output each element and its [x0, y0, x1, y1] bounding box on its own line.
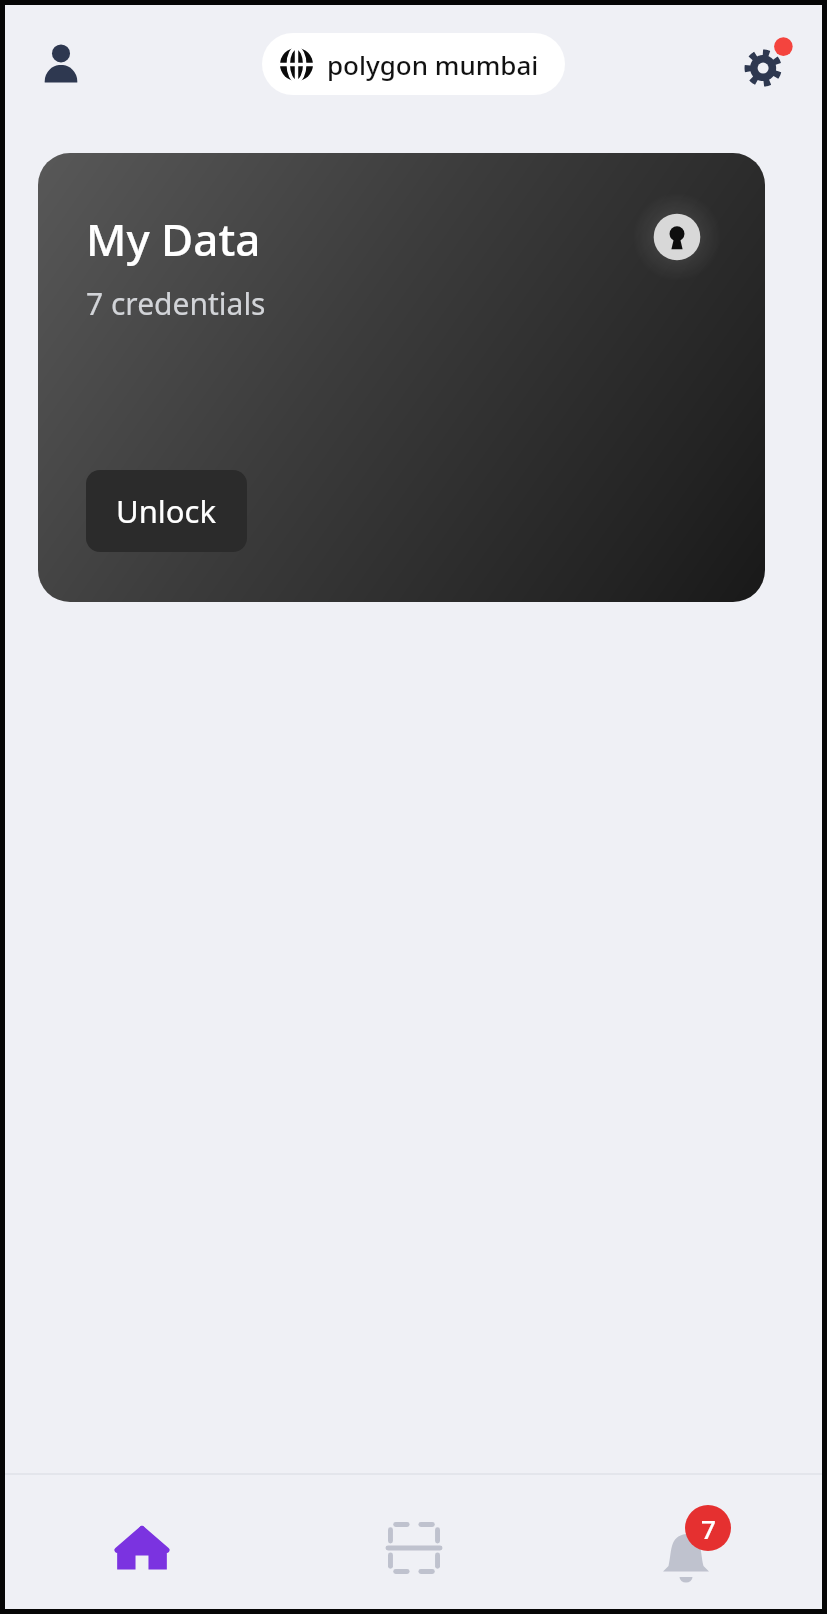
staticText: Unlock — [116, 490, 217, 532]
button[interactable]: Home — [5, 1475, 278, 1609]
button[interactable]: Unlock — [86, 470, 247, 552]
staticText: polygon mumbai — [327, 47, 539, 82]
button[interactable]: Settings — [730, 28, 802, 100]
button[interactable]: polygon mumbai — [262, 33, 565, 95]
staticText: 7 credentials — [86, 283, 266, 324]
staticText: My Data — [86, 209, 261, 269]
button[interactable]: Scan QR code — [278, 1475, 550, 1609]
button[interactable]: Notifications, 7 new — [550, 1475, 822, 1609]
button[interactable]: Profile — [27, 30, 95, 98]
staticText: 7 — [701, 1511, 716, 1546]
button[interactable]: My Data — [38, 153, 765, 602]
